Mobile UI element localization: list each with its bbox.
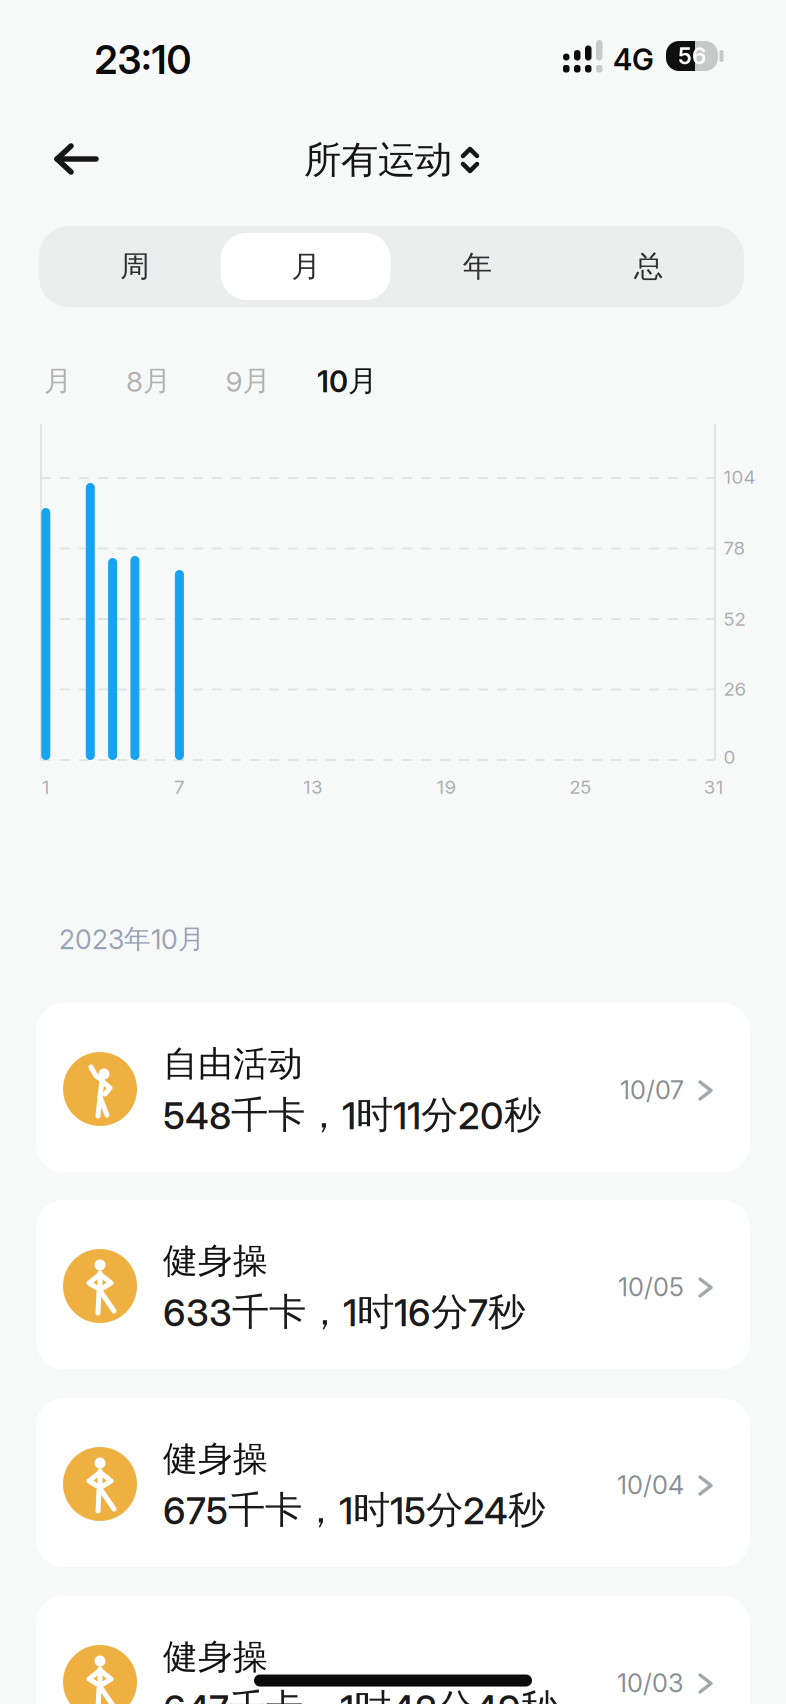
staticText: 104 [723,466,755,488]
staticText: 23:10 [94,37,191,83]
staticText: 10/07 [620,1075,684,1105]
staticText: 675千卡，1时15分24秒 [163,1487,545,1533]
staticText: 647千卡，1时42分49秒 [163,1685,558,1704]
button[interactable]: 健身操 [36,1398,750,1567]
staticText: 健身操 [163,1240,268,1282]
staticText: 8月 [126,364,171,398]
button[interactable]: 8月 [126,364,171,398]
staticText: 1 [42,776,50,798]
staticText: 13 [303,776,323,798]
staticText: 52 [723,608,745,630]
staticText: 月 [44,364,72,398]
staticText: 所有运动 [304,137,452,183]
staticText: 4G [613,42,654,77]
staticText: 0 [723,746,735,768]
button[interactable]: 年 [391,226,563,307]
button[interactable]: 健身操 [36,1596,750,1704]
staticText: 10/03 [617,1668,684,1698]
staticText: 自由活动 [163,1043,303,1085]
staticText: 19 [437,776,457,798]
staticText: 56 [678,43,706,69]
staticText: 31 [704,776,724,798]
button[interactable]: 周 [49,226,220,307]
staticText: 年 [463,248,492,284]
button[interactable]: 月 [44,364,72,398]
staticText: 633千卡，1时16分7秒 [163,1289,525,1335]
staticText: 25 [569,776,591,798]
staticText: 26 [723,678,746,700]
staticText: 548千卡，1时11分20秒 [163,1092,541,1138]
button[interactable]: 健身操 [36,1200,750,1369]
staticText: 9月 [225,364,270,398]
staticText: 总 [634,248,663,284]
staticText: 健身操 [163,1636,268,1678]
staticText: 10/05 [618,1272,684,1302]
staticText: 2023年10月 [59,923,205,955]
button[interactable]: 月 [220,226,391,307]
staticText: 月 [291,248,320,284]
button[interactable]: 9月 [225,364,270,398]
staticText: 78 [723,537,745,559]
staticText: 10月 [317,363,377,399]
button[interactable]: 10月 [317,363,377,399]
staticText: 10/04 [617,1470,684,1500]
button[interactable]: 自由活动 [36,1003,750,1172]
staticText: 周 [120,248,149,284]
button[interactable]: Back [53,137,101,181]
staticText: 7 [174,776,185,798]
button[interactable]: 总 [563,226,734,307]
staticText: 健身操 [163,1438,268,1480]
button[interactable]: 所有运动 [304,137,478,183]
